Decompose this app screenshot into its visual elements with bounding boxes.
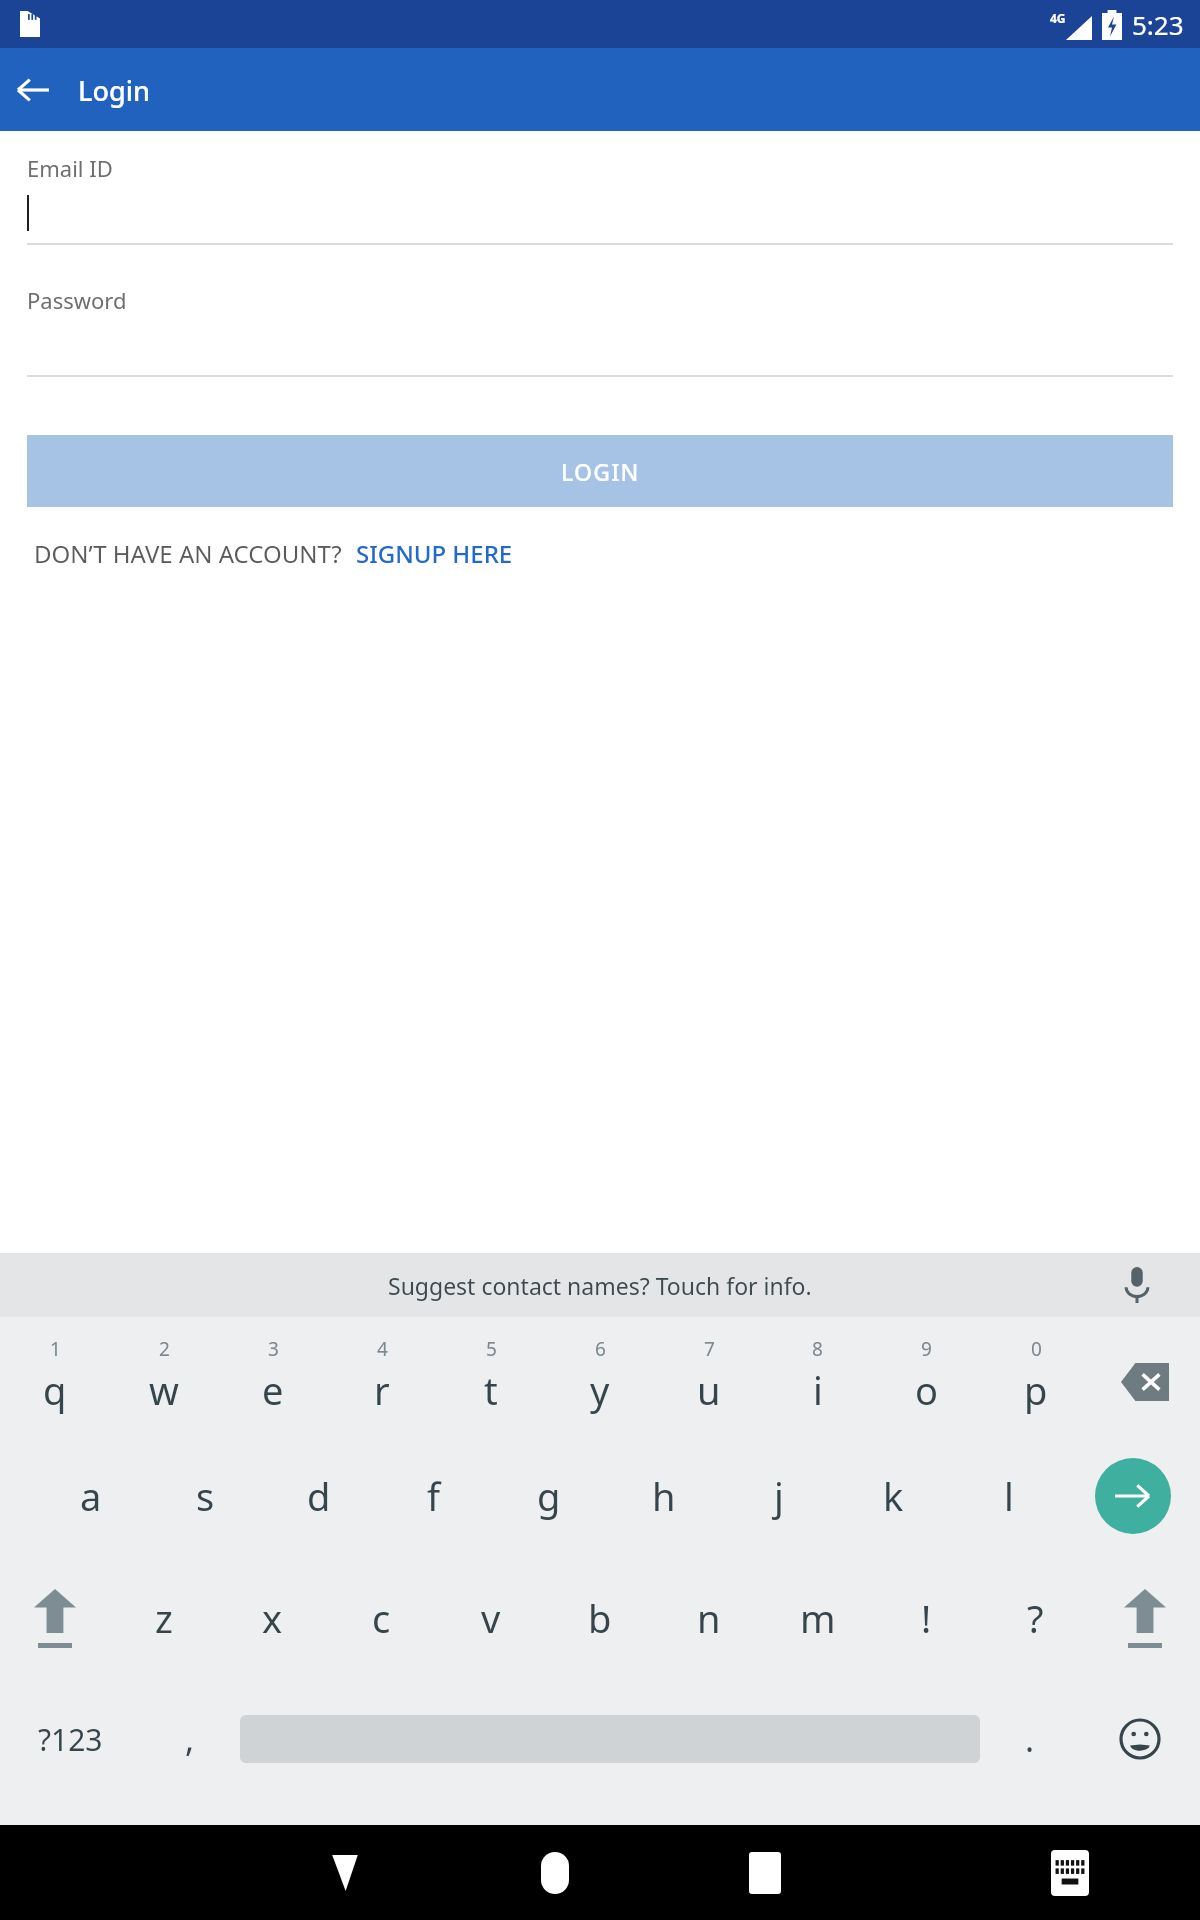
button[interactable]: 6	[545, 1317, 654, 1435]
staticText: 3	[268, 1336, 279, 1362]
staticText: 5:23	[1132, 7, 1184, 42]
staticText: o	[915, 1364, 938, 1416]
button[interactable]: s	[148, 1435, 262, 1557]
staticText: SIGNUP HERE	[356, 537, 513, 570]
button[interactable]: Back	[0, 57, 66, 123]
staticText: t	[484, 1364, 498, 1416]
button[interactable]: k	[836, 1435, 951, 1557]
button[interactable]: b	[545, 1557, 654, 1679]
staticText: LOGIN	[561, 456, 640, 487]
staticText: b	[588, 1592, 612, 1644]
staticText: Email ID	[27, 153, 113, 183]
staticText: Login	[78, 72, 150, 109]
button[interactable]: 4	[327, 1317, 436, 1435]
button[interactable]: Back	[240, 1825, 450, 1920]
button[interactable]: 7	[654, 1317, 763, 1435]
staticText: q	[43, 1364, 67, 1416]
button[interactable]: 0	[981, 1317, 1090, 1435]
button[interactable]: m	[763, 1557, 872, 1679]
button[interactable]: Shift	[0, 1557, 110, 1679]
staticText: 5	[486, 1336, 497, 1362]
staticText: ,	[185, 1716, 195, 1762]
staticText: DON’T HAVE AN ACCOUNT?	[34, 537, 342, 570]
staticText: !	[921, 1592, 932, 1644]
staticText: Password	[27, 285, 127, 315]
staticText: z	[155, 1592, 173, 1644]
staticText: k	[883, 1470, 904, 1522]
button[interactable]: g	[491, 1435, 606, 1557]
staticText: 7	[704, 1336, 715, 1362]
button[interactable]: a	[34, 1435, 148, 1557]
button[interactable]: f	[376, 1435, 491, 1557]
button[interactable]: Space	[240, 1679, 980, 1799]
staticText: l	[1004, 1470, 1014, 1522]
button[interactable]: ?	[981, 1557, 1090, 1679]
button[interactable]: 5	[436, 1317, 545, 1435]
staticText: 2	[159, 1336, 170, 1362]
button[interactable]: v	[436, 1557, 545, 1679]
staticText: m	[800, 1592, 836, 1644]
button[interactable]: 9	[872, 1317, 981, 1435]
staticText: 4	[377, 1336, 388, 1362]
staticText: x	[262, 1592, 283, 1644]
button[interactable]: x	[218, 1557, 327, 1679]
staticText: j	[774, 1470, 784, 1522]
staticText: v	[481, 1592, 501, 1644]
button[interactable]: j	[721, 1435, 836, 1557]
staticText: 8	[812, 1336, 823, 1362]
button[interactable]	[27, 183, 1173, 243]
button[interactable]: 3	[218, 1317, 327, 1435]
button[interactable]: d	[262, 1435, 376, 1557]
staticText: u	[697, 1364, 721, 1416]
staticText: .	[1025, 1716, 1035, 1762]
button[interactable]: n	[654, 1557, 763, 1679]
button[interactable]: SIGNUP HERE	[356, 537, 513, 570]
staticText: 1	[50, 1336, 61, 1362]
button[interactable]: Emoji	[1080, 1679, 1200, 1799]
staticText: ?	[1027, 1592, 1044, 1644]
button[interactable]: ?123	[0, 1679, 140, 1799]
staticText: s	[196, 1470, 215, 1522]
staticText: 9	[921, 1336, 932, 1362]
staticText: g	[537, 1470, 561, 1522]
staticText: i	[813, 1364, 823, 1416]
button[interactable]: Enter	[1066, 1435, 1200, 1557]
staticText: 4G	[1050, 10, 1066, 26]
staticText: e	[262, 1364, 284, 1416]
button[interactable]: LOGIN	[27, 435, 1173, 507]
staticText: d	[307, 1470, 331, 1522]
button[interactable]: Recent apps	[660, 1825, 870, 1920]
staticText: n	[697, 1592, 721, 1644]
staticText: 6	[595, 1336, 606, 1362]
button[interactable]: 8	[763, 1317, 872, 1435]
button[interactable]: Voice input	[1114, 1262, 1160, 1308]
button[interactable]: h	[606, 1435, 721, 1557]
button[interactable]: !	[872, 1557, 981, 1679]
staticText: ?123	[38, 1719, 103, 1760]
button[interactable]: c	[327, 1557, 436, 1679]
button[interactable]: Suggest contact names? Touch for info.	[0, 1253, 1200, 1317]
button[interactable]: .	[980, 1679, 1080, 1799]
button[interactable]: l	[951, 1435, 1066, 1557]
staticText: 0	[1031, 1336, 1042, 1362]
button[interactable]: Switch keyboard	[986, 1825, 1154, 1920]
staticText: p	[1024, 1364, 1048, 1416]
button[interactable]: 2	[109, 1317, 218, 1435]
staticText: y	[590, 1364, 610, 1416]
button[interactable]: z	[110, 1557, 218, 1679]
button[interactable]: ,	[140, 1679, 240, 1799]
button[interactable]: 1	[0, 1317, 109, 1435]
staticText: Suggest contact names? Touch for info.	[388, 1270, 812, 1301]
button[interactable]: Home	[450, 1825, 660, 1920]
staticText: w	[149, 1364, 179, 1416]
button[interactable]: Backspace	[1090, 1317, 1200, 1435]
staticText: c	[372, 1592, 391, 1644]
staticText: h	[652, 1470, 676, 1522]
staticText: r	[374, 1364, 390, 1416]
button[interactable]: Shift	[1090, 1557, 1200, 1679]
staticText: a	[80, 1470, 102, 1522]
staticText: f	[427, 1470, 441, 1522]
